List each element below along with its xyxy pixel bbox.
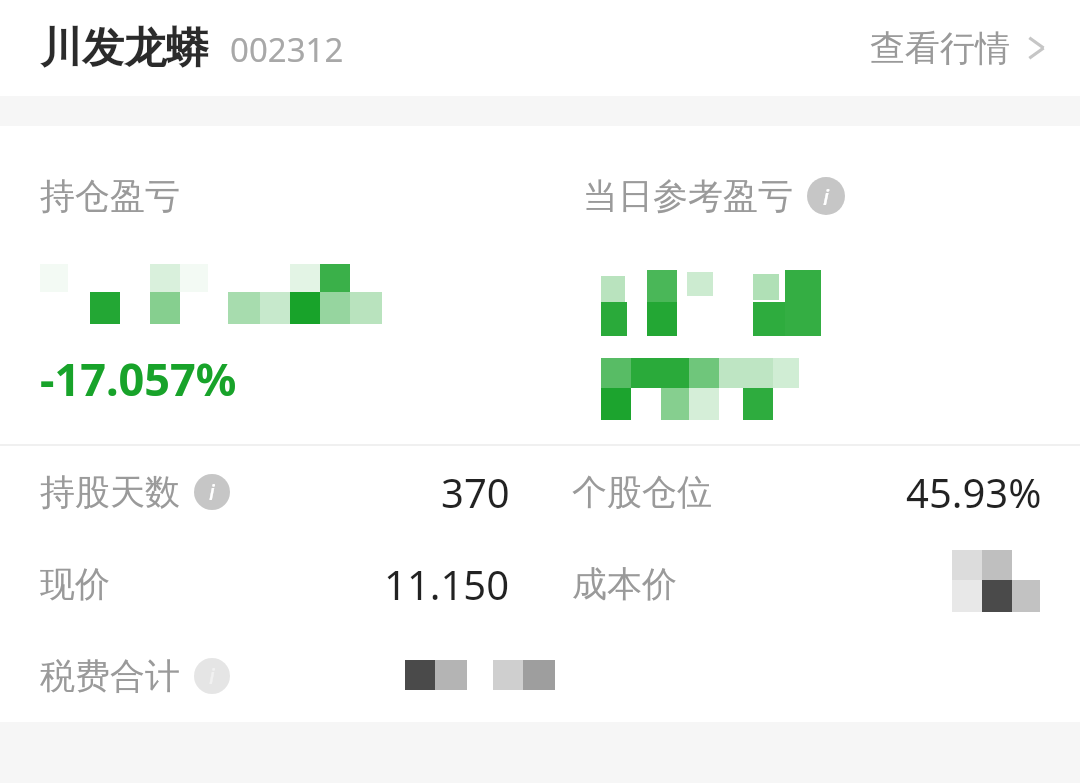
button[interactable]: 川发龙蟒 [40, 22, 344, 75]
button[interactable]: 现价 [40, 557, 510, 611]
button[interactable]: Information [194, 658, 230, 694]
staticText: 当日参考盈亏 [583, 174, 793, 218]
staticText: 370 [441, 465, 510, 519]
staticText: 个股仓位 [572, 470, 712, 514]
staticText: 成本价 [572, 562, 677, 606]
staticText: 45.93% [906, 465, 1042, 519]
staticText: i [209, 662, 215, 690]
staticText: -17.057% [40, 348, 237, 409]
staticText: 川发龙蟒 [40, 22, 208, 75]
button[interactable]: 持股天数 [40, 465, 510, 519]
staticText: 002312 [230, 27, 344, 72]
staticText: 税费合计 [40, 654, 180, 698]
button[interactable]: 个股仓位 [572, 465, 1042, 519]
staticText: 持仓盈亏 [40, 174, 180, 218]
staticText: 现价 [40, 562, 110, 606]
staticText: i [823, 181, 829, 211]
staticText: 11.150 [384, 557, 510, 611]
staticText: 查看行情 [870, 26, 1010, 70]
staticText: i [209, 478, 215, 506]
button[interactable]: 查看行情 [870, 26, 1048, 70]
staticText: 持股天数 [40, 470, 180, 514]
button[interactable]: Information [807, 177, 845, 215]
button[interactable]: 税费合计 [40, 654, 560, 698]
button[interactable]: 成本价 [572, 552, 1042, 616]
button[interactable]: Information [194, 474, 230, 510]
